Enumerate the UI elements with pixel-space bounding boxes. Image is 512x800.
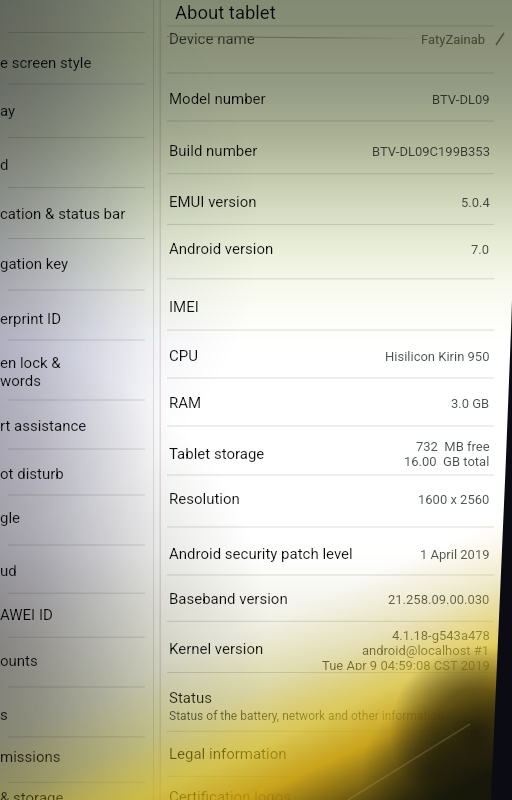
button[interactable]: gle [0, 506, 152, 530]
staticText: Kernel version [169, 640, 264, 658]
staticText: Device name [169, 30, 255, 48]
button[interactable]: Kernel version [152, 628, 512, 670]
staticText: & storage [0, 789, 64, 800]
staticText: BTV-DL09 [432, 92, 490, 107]
button[interactable]: Android security patch level [152, 542, 512, 566]
staticText: 1600 x 2560 [418, 492, 490, 507]
staticText: 7.0 [471, 242, 490, 257]
staticText: rt assistance [0, 417, 87, 435]
staticText: erprint ID [0, 310, 62, 328]
staticText: gation key [0, 255, 69, 273]
staticText: s [0, 706, 8, 724]
button[interactable]: rt assistance [0, 414, 152, 438]
staticText: IMEI [169, 298, 199, 316]
button[interactable]: IMEI [152, 295, 512, 319]
staticText: 21.258.09.00.030 [388, 592, 490, 607]
staticText: ay [0, 102, 16, 120]
button[interactable]: ot disturb [0, 462, 152, 486]
staticText: 4.1.18-g543a478 [392, 628, 490, 643]
staticText: Android security patch level [169, 545, 353, 563]
button[interactable]: erprint ID [0, 307, 152, 331]
staticText: 16.00 GB total [404, 454, 490, 469]
staticText: Legal information [169, 745, 287, 763]
staticText: Baseband version [169, 590, 288, 608]
button[interactable]: e screen style [0, 51, 152, 75]
staticText: 732 MB free [416, 439, 490, 454]
button[interactable]: Build number [152, 139, 512, 163]
button[interactable]: CPU [152, 344, 512, 368]
staticText: Tablet storage [169, 445, 265, 463]
staticText: Build number [169, 142, 258, 160]
button[interactable]: Android version [152, 237, 512, 261]
staticText: d [0, 156, 9, 174]
button[interactable]: Model number [152, 87, 512, 111]
staticText: e screen style [0, 54, 92, 72]
button[interactable]: ay [0, 99, 152, 123]
button[interactable]: Status [152, 686, 512, 726]
button[interactable]: ounts [0, 649, 152, 673]
staticText: gle [0, 509, 21, 527]
staticText: About tablet [175, 2, 276, 24]
staticText: Resolution [169, 490, 240, 508]
staticText: Tue Apr 9 04:59:08 CST 2019 [322, 658, 490, 670]
staticText: cation & status bar [0, 205, 126, 223]
staticText: ot disturb [0, 465, 64, 483]
button[interactable]: Legal information [152, 742, 512, 766]
staticText: words [0, 372, 41, 390]
staticText: ounts [0, 652, 38, 670]
staticText: 1 April 2019 [420, 547, 490, 562]
staticText: Status of the battery, network and other… [169, 709, 444, 723]
button[interactable]: ud [0, 559, 152, 583]
button[interactable]: s [0, 703, 152, 727]
button[interactable]: Tablet storage [152, 439, 512, 469]
staticText: android@localhost #1 [362, 643, 490, 658]
button[interactable]: en lock & [0, 352, 152, 392]
button[interactable]: cation & status bar [0, 202, 152, 226]
button[interactable]: Resolution [152, 487, 512, 511]
button[interactable]: RAM [152, 391, 512, 415]
staticText: EMUI version [169, 193, 257, 211]
button[interactable]: Certification logos [152, 785, 512, 800]
staticText: CPU [169, 347, 198, 365]
staticText: FatyZainab [421, 32, 486, 47]
button[interactable]: missions [0, 745, 152, 769]
staticText: RAM [169, 394, 202, 412]
button[interactable]: Device name [152, 27, 512, 51]
button[interactable]: d [0, 153, 152, 177]
staticText: 3.0 GB [451, 396, 490, 411]
staticText: ud [0, 562, 17, 580]
button[interactable]: Baseband version [152, 587, 512, 611]
staticText: Status [169, 689, 212, 707]
staticText: 5.0.4 [461, 195, 490, 210]
staticText: Certification logos [169, 788, 292, 800]
staticText: BTV-DL09C199B353 [372, 144, 490, 159]
staticText: missions [0, 748, 61, 766]
staticText: AWEI ID [0, 606, 53, 624]
staticText: en lock & [0, 354, 61, 372]
staticText: Model number [169, 90, 266, 108]
staticText: Android version [169, 240, 274, 258]
button[interactable]: gation key [0, 252, 152, 276]
button[interactable]: EMUI version [152, 190, 512, 214]
button[interactable]: AWEI ID [0, 603, 152, 627]
staticText: Hisilicon Kirin 950 [385, 349, 490, 364]
